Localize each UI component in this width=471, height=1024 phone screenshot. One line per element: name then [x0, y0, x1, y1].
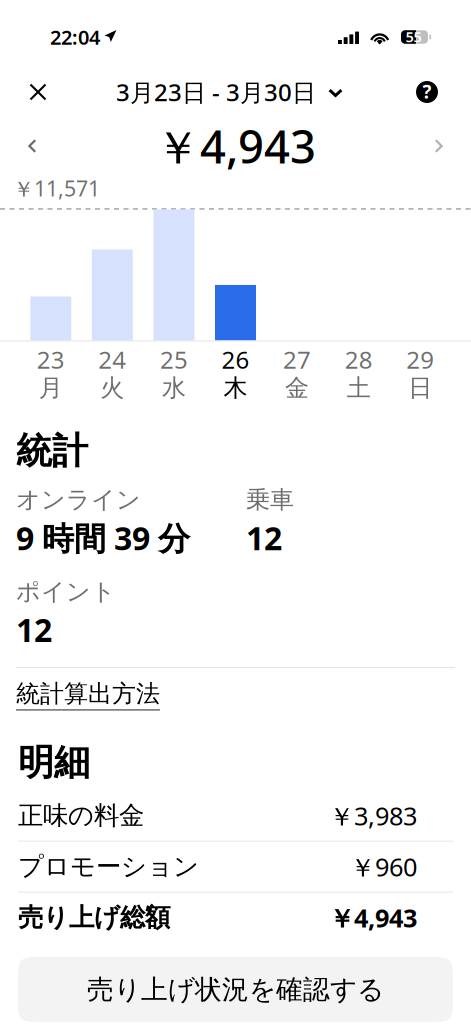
staticText: 29 [406, 343, 434, 375]
staticText: プロモーション [18, 851, 199, 882]
staticText: 24 [98, 343, 126, 375]
staticText: 売り上げ総額 [18, 902, 170, 933]
staticText: 土 [347, 373, 371, 403]
staticText: 売り上げ状況を確認する [87, 973, 384, 1006]
staticText: ￥11,571 [13, 174, 100, 202]
button[interactable]: ヘルプ [400, 70, 454, 114]
button[interactable]: 3月23日 - 3月30日 [116, 66, 343, 118]
staticText: 26 [221, 343, 249, 375]
staticText: 22:04 [50, 24, 100, 50]
staticText: 金 [285, 373, 309, 403]
staticText: ￥4,943 [155, 116, 316, 176]
staticText: 水 [162, 373, 186, 403]
staticText: 火 [100, 373, 124, 403]
staticText: 木 [223, 373, 247, 403]
staticText: 乗車 [246, 485, 294, 514]
staticText: 28 [345, 343, 373, 375]
staticText: 23 [37, 343, 65, 375]
staticText: 9 時間 39 分 [16, 516, 190, 559]
staticText: オンライン [16, 485, 141, 514]
staticText: ￥4,943 [329, 901, 417, 935]
staticText: 25 [160, 343, 188, 375]
staticText: ￥3,983 [329, 799, 417, 833]
button[interactable]: 売り上げ状況を確認する [18, 957, 453, 1022]
staticText: ? [422, 79, 431, 104]
staticText: 27 [283, 343, 311, 375]
button[interactable]: 統計算出方法 [16, 668, 160, 716]
staticText: ￥960 [350, 850, 417, 884]
button[interactable]: 前の週 [14, 125, 51, 167]
staticText: 月 [39, 373, 63, 403]
staticText: ポイント [16, 577, 116, 606]
staticText: 12 [16, 608, 52, 651]
staticText: 統計算出方法 [16, 679, 160, 708]
staticText: 55 [405, 27, 421, 46]
staticText: 3月23日 - 3月30日 [116, 76, 316, 108]
button[interactable]: 次の週 [420, 125, 457, 167]
staticText: 日 [408, 373, 432, 403]
staticText: 統計 [16, 429, 88, 473]
staticText: 12 [246, 516, 282, 559]
staticText: 明細 [18, 740, 90, 785]
button[interactable]: 閉じる [17, 72, 59, 112]
staticText: 正味の料金 [18, 800, 144, 831]
